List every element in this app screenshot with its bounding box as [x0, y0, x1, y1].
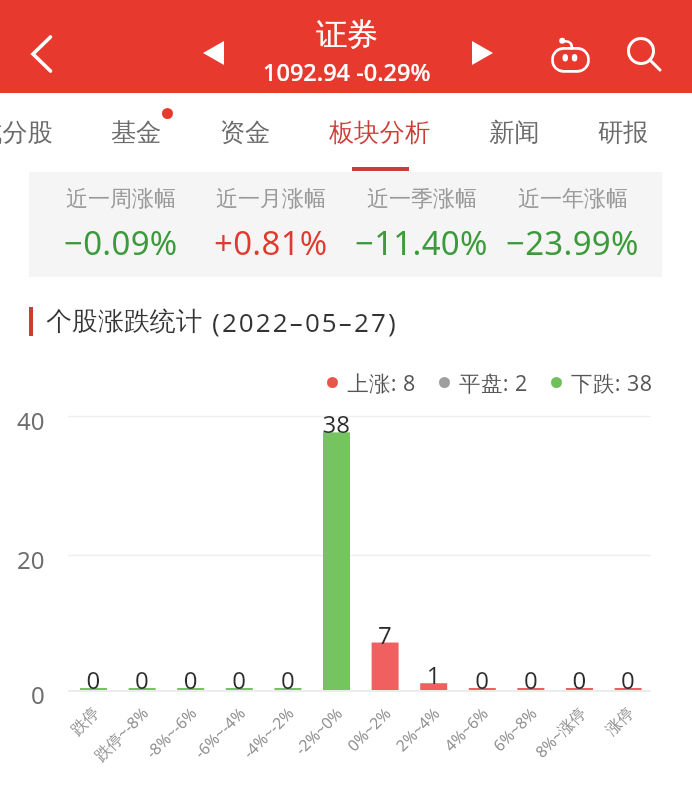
staticText: 新闻	[489, 117, 540, 148]
staticText: 个股涨跌统计	[46, 305, 202, 338]
staticText: 证券	[316, 15, 378, 54]
button[interactable]: Back	[16, 30, 64, 78]
staticText: −11.40%	[355, 220, 488, 265]
button[interactable]: 板块分析	[300, 93, 460, 172]
staticText: 基金	[111, 117, 162, 148]
staticText: 近一月涨幅	[216, 185, 326, 213]
staticText: 近一季涨幅	[367, 185, 477, 213]
staticText: 近一年涨幅	[518, 185, 628, 213]
staticText: 平盘: 2	[459, 368, 528, 397]
staticText: +0.81%	[214, 220, 328, 265]
button[interactable]: 研报	[569, 93, 678, 172]
button[interactable]: 成分股	[0, 93, 82, 172]
button[interactable]: 资金	[191, 93, 300, 172]
staticText: 下跌: 38	[571, 368, 653, 397]
staticText: 1092.94 -0.29%	[263, 56, 431, 88]
button[interactable]: Previous	[187, 29, 235, 77]
staticText: 研报	[598, 117, 649, 148]
staticText: −23.99%	[506, 220, 639, 265]
button[interactable]: Assistant	[545, 24, 593, 72]
button[interactable]: 基金	[82, 93, 191, 172]
staticText: 近一周涨幅	[66, 185, 176, 213]
staticText: 成分股	[0, 117, 53, 148]
staticText: (2022–05–27)	[212, 304, 398, 339]
button[interactable]: Search	[617, 26, 665, 74]
staticText: 板块分析	[329, 117, 431, 148]
button[interactable]: 新闻	[460, 93, 569, 172]
button[interactable]: Next	[458, 29, 506, 77]
staticText: 上涨: 8	[347, 368, 416, 397]
staticText: 资金	[220, 117, 271, 148]
staticText: −0.09%	[64, 220, 178, 265]
